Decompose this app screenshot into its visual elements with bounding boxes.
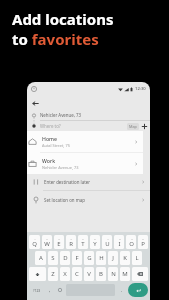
- staticText: P: [141, 240, 145, 248]
- button[interactable]: X: [60, 267, 70, 281]
- staticText: Y: [93, 240, 97, 248]
- staticText: 2: [46, 237, 48, 240]
- button[interactable]: Z: [48, 267, 58, 281]
- staticText: ?123: [33, 288, 41, 293]
- button[interactable]: Map: [127, 123, 139, 130]
- staticText: 9: [131, 237, 133, 240]
- button[interactable]: Home: [27, 131, 143, 152]
- staticText: O: [129, 240, 134, 248]
- staticText: R: [69, 240, 73, 248]
- staticText: .: [121, 287, 123, 294]
- button[interactable]: 8: [114, 235, 124, 249]
- staticText: 8: [119, 237, 121, 240]
- button[interactable]: Emoji: [54, 282, 65, 298]
- staticText: A: [39, 254, 43, 262]
- staticText: J: [112, 254, 114, 262]
- staticText: C: [75, 270, 79, 278]
- staticText: Home: [42, 135, 57, 142]
- button[interactable]: Backspace: [132, 267, 148, 281]
- button[interactable]: Set location on map: [27, 191, 150, 208]
- button[interactable]: Shift: [29, 267, 46, 281]
- button[interactable]: ,: [45, 282, 54, 298]
- button[interactable]: 6: [90, 235, 100, 249]
- button[interactable]: S: [48, 251, 58, 265]
- staticText: Add locations: [12, 9, 114, 29]
- staticText: 1: [34, 237, 36, 240]
- button[interactable]: N: [108, 267, 118, 281]
- button[interactable]: D: [60, 251, 70, 265]
- staticText: Where to?: [40, 123, 61, 129]
- staticText: U: [105, 240, 110, 248]
- button[interactable]: L: [132, 251, 142, 265]
- button[interactable]: Enter destination later: [27, 173, 150, 190]
- staticText: M: [122, 270, 128, 278]
- staticText: T: [81, 240, 85, 248]
- staticText: H: [99, 254, 104, 262]
- button[interactable]: H: [96, 251, 106, 265]
- button[interactable]: A: [35, 251, 46, 265]
- staticText: Set location on map: [44, 197, 140, 203]
- staticText: K: [123, 254, 127, 262]
- button[interactable]: C: [72, 267, 82, 281]
- staticText: V: [87, 270, 91, 278]
- button[interactable]: 5: [78, 235, 88, 249]
- staticText: 5: [82, 237, 84, 240]
- staticText: Q: [32, 240, 37, 248]
- staticText: Nehicler Avenue, 73: [40, 112, 82, 118]
- button[interactable]: 1: [29, 235, 40, 249]
- button[interactable]: 7: [102, 235, 112, 249]
- staticText: Map: [129, 124, 137, 129]
- button[interactable]: G: [84, 251, 94, 265]
- staticText: to favorites: [12, 29, 99, 49]
- staticText: Enter destination later: [44, 179, 140, 185]
- button[interactable]: Nehicler Avenue, 73: [40, 110, 150, 120]
- button[interactable]: M: [120, 267, 130, 281]
- staticText: L: [135, 254, 139, 262]
- button[interactable]: K: [120, 251, 130, 265]
- staticText: 4: [70, 237, 72, 240]
- staticText: 7: [107, 237, 109, 240]
- button[interactable]: J: [108, 251, 118, 265]
- staticText: 6: [94, 237, 96, 240]
- button[interactable]: Back: [27, 97, 43, 110]
- button[interactable]: Enter: [128, 283, 148, 297]
- staticText: X: [63, 270, 67, 278]
- staticText: N: [111, 270, 116, 278]
- button[interactable]: 9: [126, 235, 136, 249]
- button[interactable]: 3: [54, 235, 64, 249]
- staticText: W: [44, 240, 50, 248]
- button[interactable]: V: [84, 267, 94, 281]
- staticText: Autal Street, 75: [42, 143, 70, 148]
- staticText: 12:30: [135, 86, 146, 92]
- staticText: D: [63, 254, 68, 262]
- staticText: S: [51, 254, 55, 262]
- button[interactable]: 0: [138, 235, 148, 249]
- button[interactable]: 4: [66, 235, 76, 249]
- staticText: Nehicler Avenue, 73: [42, 165, 79, 170]
- button[interactable]: Work: [27, 153, 143, 174]
- button[interactable]: Where to?: [40, 121, 127, 131]
- staticText: Work: [42, 157, 56, 164]
- button[interactable]: B: [96, 267, 106, 281]
- staticText: ,: [49, 287, 51, 294]
- staticText: Z: [51, 270, 55, 278]
- staticText: 3: [58, 237, 60, 240]
- staticText: F: [75, 254, 79, 262]
- button[interactable]: Add stop: [139, 121, 150, 131]
- staticText: B: [99, 270, 103, 278]
- staticText: I: [118, 240, 121, 248]
- staticText: E: [57, 240, 61, 248]
- button[interactable]: ?123: [28, 282, 45, 298]
- button[interactable]: F: [72, 251, 82, 265]
- staticText: 0: [142, 237, 144, 240]
- staticText: G: [87, 254, 92, 262]
- button[interactable]: 2: [42, 235, 52, 249]
